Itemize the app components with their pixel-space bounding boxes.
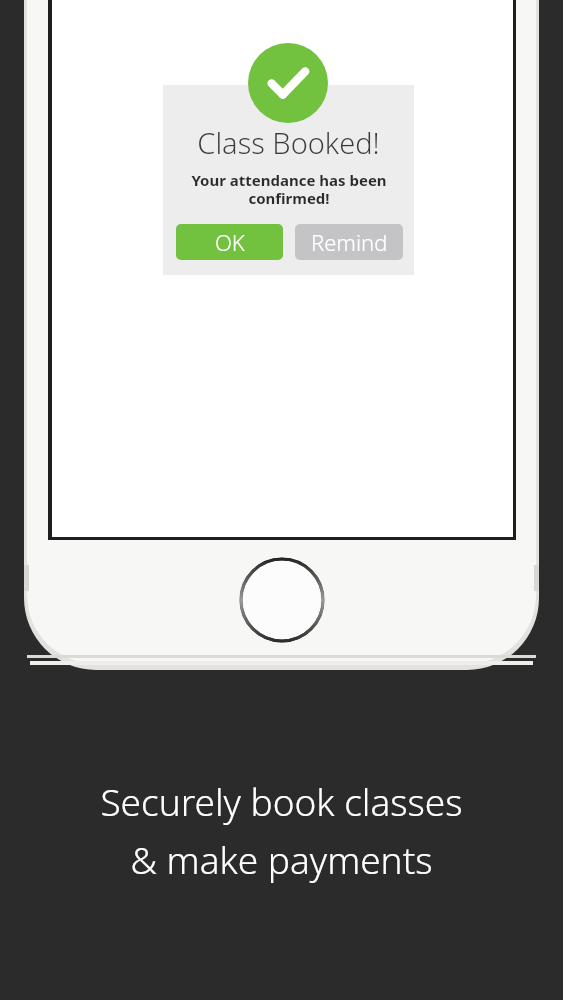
staticText: Your attendance has been confirmed! xyxy=(191,170,387,209)
staticText: & make payments xyxy=(130,834,433,884)
staticText: Securely book classes xyxy=(100,776,463,826)
button[interactable]: Remind xyxy=(295,224,403,260)
button[interactable]: OK xyxy=(176,224,283,260)
staticText: Remind xyxy=(311,227,388,257)
button[interactable]: Home xyxy=(236,554,328,646)
staticText: OK xyxy=(215,227,245,257)
staticText: Class Booked! xyxy=(197,123,380,162)
other: Booking confirmed xyxy=(248,43,328,123)
